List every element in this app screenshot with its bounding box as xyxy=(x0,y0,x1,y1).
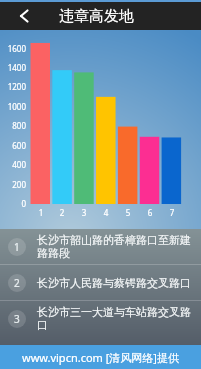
staticText: 7 xyxy=(162,207,182,218)
staticText: 600 xyxy=(0,140,26,151)
staticText: 长沙市人民路与蔡锷路交叉路口 xyxy=(37,276,191,290)
staticText: 3 xyxy=(14,312,20,326)
staticText: 1000 xyxy=(0,101,26,112)
staticText: 2 xyxy=(14,276,20,290)
staticText: 200 xyxy=(0,179,26,190)
staticText: 1200 xyxy=(0,81,26,92)
staticText: 800 xyxy=(0,120,26,131)
button[interactable]: 2 xyxy=(0,265,201,300)
staticText: 6 xyxy=(140,207,160,218)
staticText: 5 xyxy=(118,207,138,218)
staticText: 2 xyxy=(52,207,72,218)
staticText: 1600 xyxy=(0,43,26,54)
button[interactable]: Back xyxy=(0,2,36,30)
button[interactable]: 1 xyxy=(0,229,201,264)
staticText: 长沙市三一大道与车站路交叉路口 xyxy=(37,305,193,332)
staticText: 1400 xyxy=(0,62,26,73)
staticText: 3 xyxy=(74,207,94,218)
staticText: 1 xyxy=(14,240,20,254)
staticText: 0 xyxy=(0,198,26,209)
staticText: www.vipcn.com [清风网络]提供 xyxy=(22,350,179,365)
staticText: 1 xyxy=(31,207,51,218)
staticText: 400 xyxy=(0,159,26,170)
staticText: 4 xyxy=(96,207,116,218)
staticText: 违章高发地 xyxy=(59,7,134,26)
button[interactable]: 3 xyxy=(0,301,201,336)
staticText: 长沙市韶山路的香樟路口至新建路路段 xyxy=(37,233,193,260)
